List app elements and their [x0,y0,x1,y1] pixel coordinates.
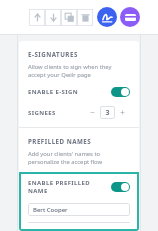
button[interactable]: Decrease [85,106,100,119]
button[interactable]: Bert Cooper [28,203,130,216]
button[interactable]: Signature [97,7,117,27]
staticText: ENABLE PREFILLED [28,179,91,187]
staticText: Allow clients to sign when they [28,63,112,71]
staticText: ENABLE E-SIGN [28,88,78,96]
staticText: E-SIGNATURES [28,50,78,58]
button[interactable]: Duplicate [61,9,77,26]
staticText: Bert Cooper [33,206,68,214]
staticText: PREFILLED NAMES [28,137,92,145]
button[interactable] [111,182,130,192]
button[interactable]: Card [120,7,140,27]
staticText: 3 [105,108,110,118]
button[interactable]: ENABLE PREFILLED [28,179,130,195]
staticText: accept your Qwilr page [28,71,91,79]
button[interactable] [111,87,130,97]
button[interactable]: Delete [77,9,93,26]
button[interactable]: Increase [115,106,130,119]
button[interactable]: Move up [29,9,45,26]
button[interactable]: Move down [45,9,61,26]
staticText: Add your clients' names to [28,150,101,158]
staticText: SIGNEES [28,109,56,117]
button[interactable]: ENABLE E-SIGN [28,87,130,97]
staticText: NAME [28,187,48,195]
staticText: personalize the accept flow [28,158,102,166]
